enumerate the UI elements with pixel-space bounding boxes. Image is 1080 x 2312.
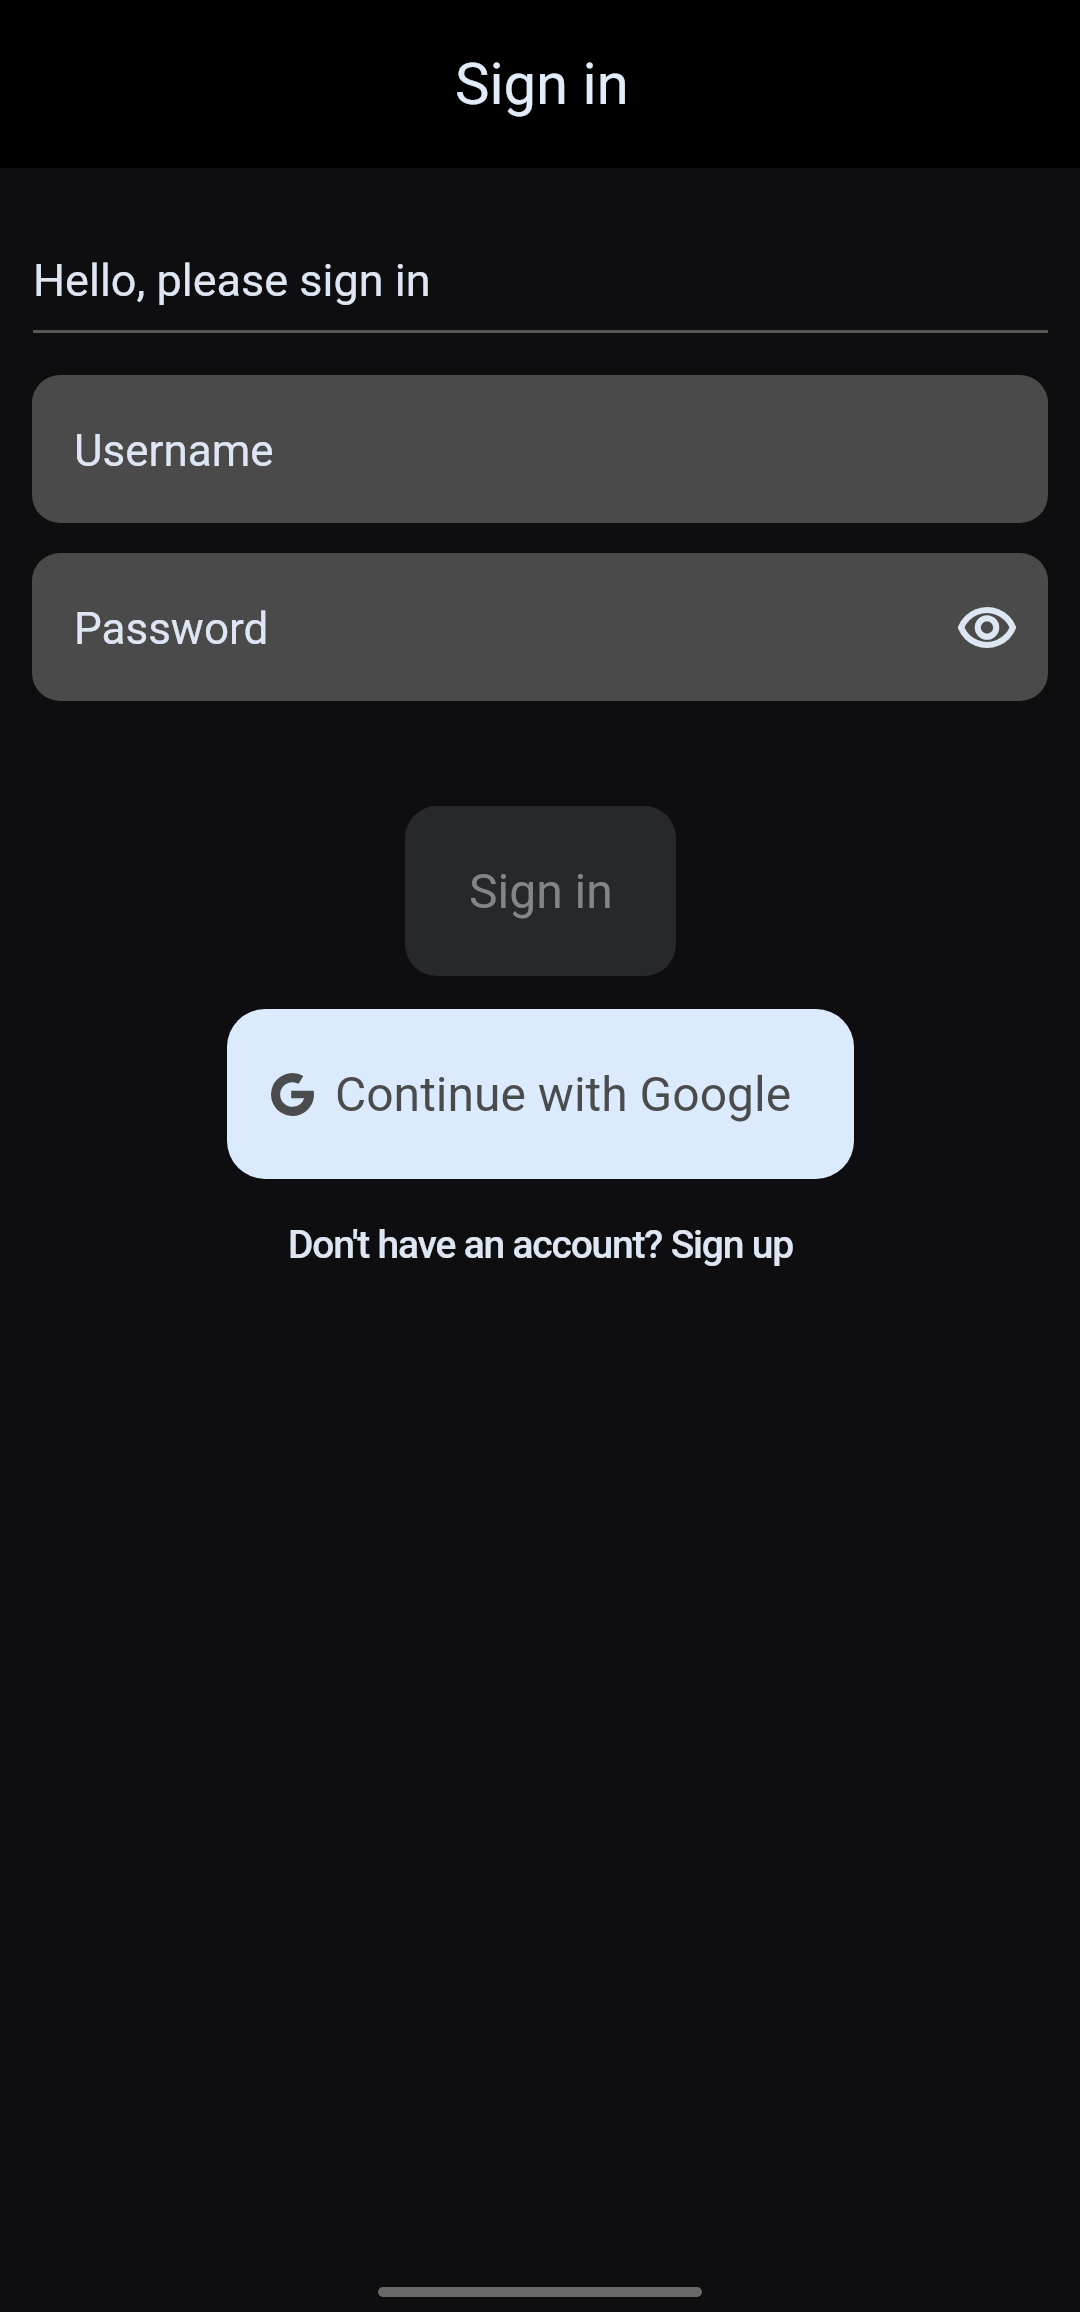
button[interactable]: Show password [937,577,1037,677]
button[interactable]: Username [32,375,1048,523]
staticText: Continue with Google [335,1066,792,1122]
button[interactable]: Sign in [405,806,676,976]
staticText: Don't have an account? Sign up [288,1222,793,1268]
button[interactable]: Password [32,553,1048,701]
button[interactable]: Don't have an account? Sign up [278,1212,803,1278]
staticText: Sign in [469,863,613,919]
staticText: Sign in [455,50,629,118]
staticText: Password [74,603,269,655]
button[interactable]: Continue with Google [227,1009,854,1179]
staticText: Username [74,425,274,477]
staticText: Hello, please sign in [33,254,431,307]
